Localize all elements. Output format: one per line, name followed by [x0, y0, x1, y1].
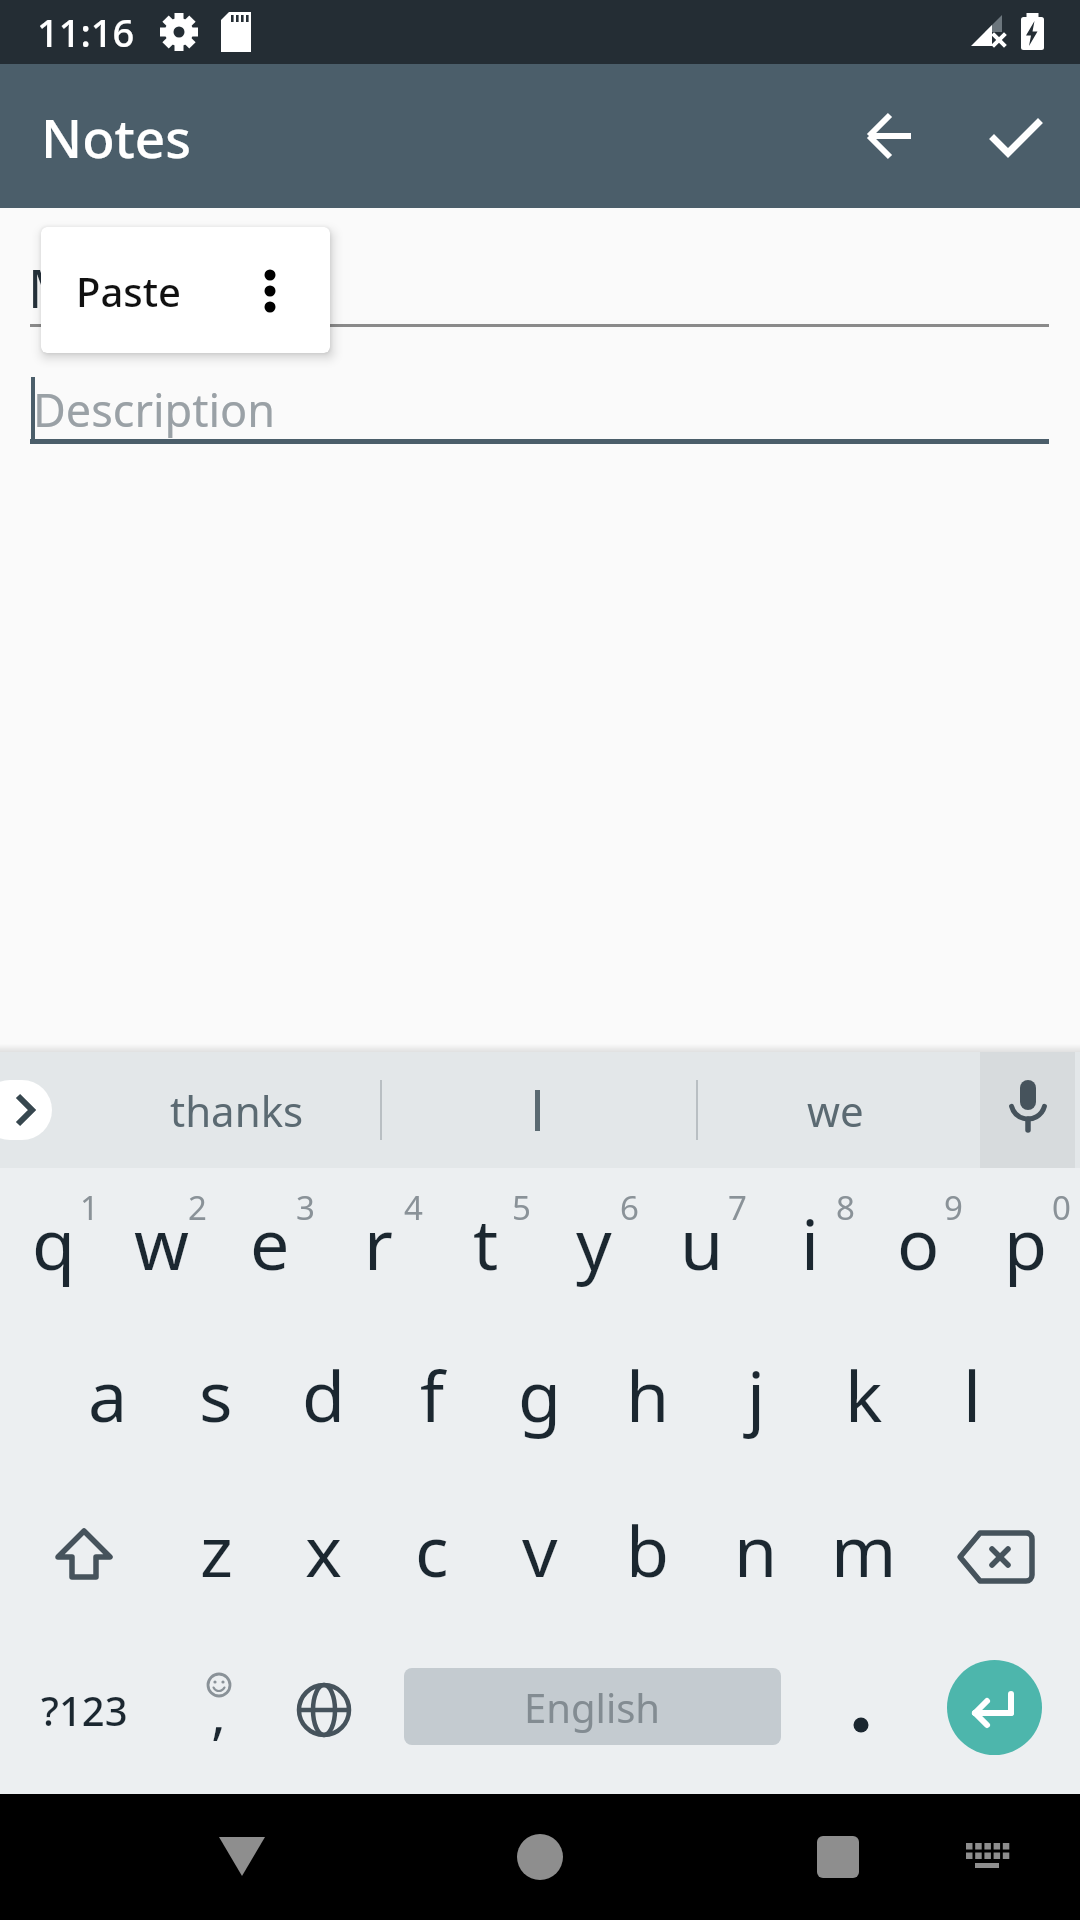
button[interactable]: [492, 1809, 588, 1905]
button[interactable]: z: [162, 1471, 270, 1627]
button[interactable]: [790, 1809, 886, 1905]
button[interactable]: English: [404, 1668, 781, 1745]
button[interactable]: [980, 1052, 1075, 1168]
button[interactable]: u: [648, 1164, 756, 1320]
button[interactable]: [940, 1809, 1036, 1905]
staticText: r: [364, 1195, 393, 1290]
staticText: p: [1004, 1195, 1048, 1290]
button[interactable]: [194, 1809, 290, 1905]
button[interactable]: n: [702, 1471, 810, 1627]
button[interactable]: r: [324, 1164, 432, 1320]
staticText: h: [626, 1347, 670, 1442]
staticText: e: [250, 1195, 290, 1290]
staticText: i: [801, 1195, 820, 1290]
staticText: b: [626, 1502, 670, 1597]
staticText: w: [134, 1195, 190, 1290]
staticText: 8: [836, 1185, 855, 1230]
button[interactable]: we: [685, 1056, 985, 1164]
staticText: t: [473, 1195, 499, 1290]
button[interactable]: d: [270, 1316, 378, 1472]
button[interactable]: f: [378, 1316, 486, 1472]
button[interactable]: h: [594, 1316, 702, 1472]
button[interactable]: s: [162, 1316, 270, 1472]
button[interactable]: thanks: [87, 1056, 387, 1164]
button[interactable]: e: [216, 1164, 324, 1320]
button[interactable]: [4, 1479, 164, 1635]
staticText: u: [680, 1195, 724, 1290]
button[interactable]: [842, 88, 938, 184]
staticText: c: [415, 1502, 449, 1597]
staticText: 6: [620, 1185, 639, 1230]
staticText: 11:16: [37, 6, 135, 58]
staticText: we: [807, 1082, 864, 1139]
button[interactable]: x: [270, 1471, 378, 1627]
button[interactable]: Paste: [41, 227, 330, 353]
button[interactable]: [968, 89, 1064, 185]
button[interactable]: j: [702, 1316, 810, 1472]
staticText: j: [747, 1347, 766, 1442]
staticText: 9: [944, 1185, 963, 1230]
button[interactable]: [806, 1635, 914, 1785]
button[interactable]: v: [486, 1471, 594, 1627]
button[interactable]: [0, 1080, 52, 1140]
staticText: M: [28, 252, 76, 323]
staticText: 1: [80, 1185, 99, 1230]
staticText: d: [302, 1347, 346, 1442]
staticText: s: [199, 1347, 233, 1442]
button[interactable]: w: [108, 1164, 216, 1320]
staticText: English: [524, 1680, 661, 1734]
button[interactable]: [272, 1635, 376, 1785]
staticText: n: [734, 1502, 778, 1597]
staticText: 3: [296, 1185, 315, 1230]
staticText: 2: [188, 1185, 207, 1230]
button[interactable]: ?123: [4, 1635, 164, 1785]
button[interactable]: [916, 1479, 1076, 1635]
staticText: 7: [728, 1185, 747, 1230]
staticText: Notes: [41, 101, 191, 173]
button[interactable]: g: [486, 1316, 594, 1472]
button[interactable]: m: [810, 1471, 918, 1627]
staticText: ,: [211, 1674, 227, 1750]
staticText: f: [420, 1347, 445, 1442]
staticText: y: [576, 1195, 612, 1290]
button[interactable]: i: [756, 1164, 864, 1320]
button[interactable]: [947, 1660, 1042, 1755]
staticText: k: [845, 1347, 883, 1442]
staticText: 5: [512, 1185, 531, 1230]
staticText: q: [32, 1195, 76, 1290]
staticText: 0: [1052, 1185, 1071, 1230]
staticText: g: [518, 1347, 562, 1442]
staticText: l: [963, 1347, 982, 1442]
staticText: Paste: [76, 264, 181, 318]
staticText: Description: [33, 379, 276, 440]
staticText: z: [200, 1502, 233, 1597]
staticText: m: [831, 1502, 897, 1597]
staticText: x: [305, 1502, 343, 1597]
button[interactable]: a: [54, 1316, 162, 1472]
button[interactable]: p: [972, 1164, 1080, 1320]
button[interactable]: c: [378, 1471, 486, 1627]
button[interactable]: y: [540, 1164, 648, 1320]
button[interactable]: b: [594, 1471, 702, 1627]
staticText: o: [897, 1195, 940, 1290]
button[interactable]: k: [810, 1316, 918, 1472]
staticText: a: [88, 1347, 128, 1442]
button[interactable]: o: [864, 1164, 972, 1320]
button[interactable]: t: [432, 1164, 540, 1320]
button[interactable]: [387, 1056, 687, 1164]
button[interactable]: [164, 1635, 272, 1785]
staticText: v: [522, 1502, 558, 1597]
button[interactable]: q: [0, 1164, 108, 1320]
staticText: thanks: [170, 1082, 304, 1139]
button[interactable]: l: [918, 1316, 1026, 1472]
staticText: 4: [404, 1185, 423, 1230]
staticText: ?123: [41, 1683, 128, 1737]
